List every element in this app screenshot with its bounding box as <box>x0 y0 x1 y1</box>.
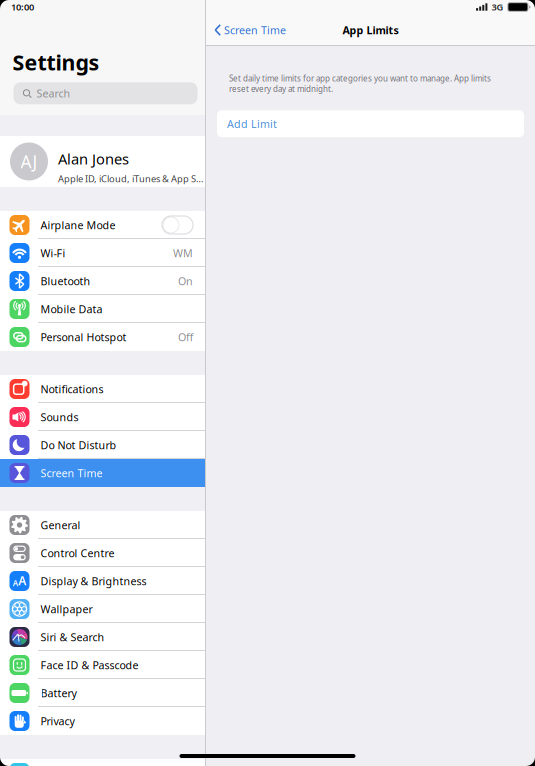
button[interactable]: Wi-Fi <box>0 239 205 267</box>
staticText: WM <box>173 246 193 260</box>
staticText: App Limits <box>342 23 398 37</box>
staticText: Bluetooth <box>40 274 90 288</box>
staticText: Control Centre <box>40 546 114 560</box>
staticText: A <box>18 572 26 588</box>
staticText: Wi-Fi <box>40 246 65 260</box>
staticText: Apple ID, iCloud, iTunes & App St… <box>58 172 205 185</box>
button[interactable]: A <box>0 567 205 595</box>
staticText: Siri & Search <box>40 630 104 644</box>
staticText: Wallpaper <box>40 602 92 616</box>
staticText: Off <box>178 330 193 344</box>
button[interactable]: Sounds <box>0 403 205 431</box>
staticText: On <box>178 274 193 288</box>
button[interactable]: Add Limit <box>217 110 524 137</box>
staticText: Set daily time limits for app categories… <box>229 73 491 94</box>
button[interactable]: Screen Time <box>206 15 294 45</box>
button[interactable]: Battery <box>0 679 205 707</box>
staticText: General <box>40 518 80 532</box>
button[interactable]: Control Centre <box>0 539 205 567</box>
staticText: Privacy <box>40 714 74 728</box>
staticText: Airplane Mode <box>40 218 115 232</box>
staticText: Settings <box>12 48 99 76</box>
staticText: Screen Time <box>224 23 286 37</box>
staticText: A <box>13 578 18 588</box>
staticText: Screen Time <box>40 466 102 480</box>
staticText: Do Not Disturb <box>40 438 116 452</box>
button[interactable]: Notifications <box>0 375 205 403</box>
button[interactable]: General <box>0 511 205 539</box>
button[interactable]: Face ID & Passcode <box>0 651 205 679</box>
staticText: 10:00 <box>11 1 34 13</box>
staticText: Notifications <box>40 382 103 396</box>
button[interactable]: Wallpaper <box>0 595 205 623</box>
button[interactable]: Personal Hotspot <box>0 323 205 351</box>
staticText: Sounds <box>40 410 78 424</box>
button[interactable]: Airplane Mode <box>0 211 205 239</box>
staticText: Display & Brightness <box>40 574 146 588</box>
staticText: 3G <box>491 1 503 13</box>
button[interactable]: Privacy <box>0 707 205 735</box>
button[interactable]: Bluetooth <box>0 267 205 295</box>
staticText: Add Limit <box>227 117 277 131</box>
staticText: AJ <box>20 150 37 173</box>
staticText: Alan Jones <box>58 149 129 169</box>
button[interactable]: Do Not Disturb <box>0 431 205 459</box>
staticText: Mobile Data <box>40 302 102 316</box>
staticText: Personal Hotspot <box>40 330 126 344</box>
staticText: Battery <box>40 686 76 700</box>
button[interactable]: AJ <box>0 136 205 187</box>
staticText: Search <box>36 86 70 100</box>
button[interactable]: Siri & Search <box>0 623 205 651</box>
button[interactable]: Mobile Data <box>0 295 205 323</box>
staticText: Face ID & Passcode <box>40 658 138 672</box>
button[interactable]: Screen Time <box>0 459 205 487</box>
button[interactable]: iTunes & App Store <box>0 759 205 766</box>
